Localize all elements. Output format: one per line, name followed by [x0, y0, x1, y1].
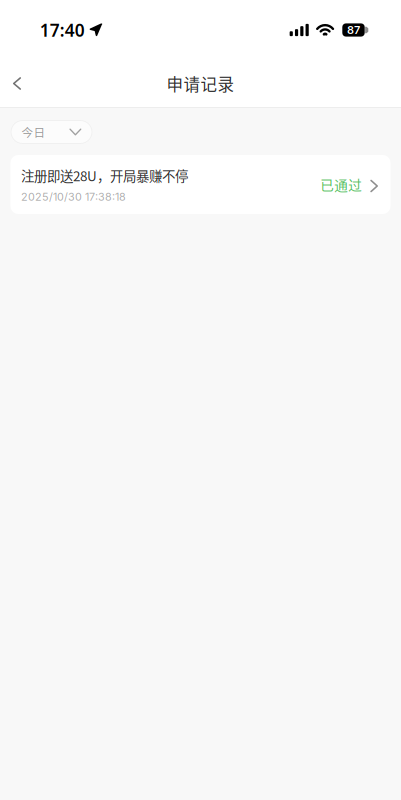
- button[interactable]: 今日: [10, 120, 92, 144]
- staticText: 87: [347, 23, 360, 37]
- button[interactable]: 注册即送28U，开局暴赚不停: [10, 155, 390, 214]
- staticText: 注册即送28U，开局暴赚不停: [21, 166, 188, 185]
- staticText: 今日: [21, 124, 45, 140]
- staticText: 2025/10/30 17:38:18: [21, 190, 126, 203]
- staticText: 17:40: [40, 18, 85, 41]
- button[interactable]: Back: [0, 61, 34, 105]
- staticText: 已通过: [320, 175, 362, 194]
- staticText: 申请记录: [166, 71, 234, 95]
